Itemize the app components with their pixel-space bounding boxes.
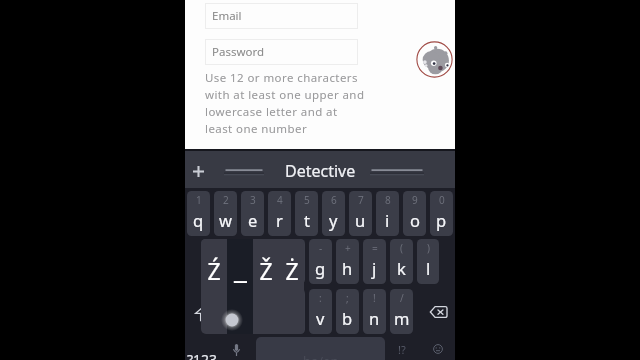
button[interactable]: 5: [295, 191, 318, 236]
staticText: 3: [250, 193, 256, 207]
staticText: 5: [304, 193, 310, 207]
staticText: Ż: [285, 255, 299, 286]
staticText: /: [400, 291, 404, 305]
staticText: m: [394, 307, 410, 329]
staticText: 6: [331, 193, 337, 207]
staticText: v: [316, 307, 325, 329]
button[interactable]: Email: [205, 3, 358, 29]
button[interactable]: 8: [376, 191, 399, 236]
staticText: u: [355, 209, 366, 231]
staticText: Ž: [259, 255, 273, 286]
button[interactable]: Emoji: [424, 337, 451, 360]
staticText: p: [436, 209, 447, 231]
button[interactable]: 6: [322, 191, 345, 236]
button[interactable]: ;: [336, 289, 359, 334]
button[interactable]: Detective: [285, 160, 356, 182]
button[interactable]: 3: [241, 191, 264, 236]
staticText: q: [193, 209, 204, 231]
button[interactable]: 1: [187, 191, 210, 236]
staticText: 2: [223, 193, 229, 207]
staticText: l: [426, 257, 431, 279]
button[interactable]: Shift: [185, 289, 226, 334]
staticText: ba/en: [303, 352, 339, 360]
staticText: k: [397, 257, 406, 279]
staticText: _: [234, 247, 247, 286]
button[interactable]: 7: [349, 191, 372, 236]
staticText: =: [372, 241, 378, 255]
button[interactable]: Voice input: [223, 337, 250, 360]
button[interactable]: Backspace: [415, 289, 455, 334]
button[interactable]: _: [227, 239, 253, 289]
button[interactable]: Password: [205, 39, 358, 65]
staticText: z: [236, 307, 244, 329]
button[interactable]: !?: [388, 337, 415, 360]
staticText: 9: [412, 193, 418, 207]
staticText: w: [219, 209, 232, 231]
button[interactable]: =: [363, 239, 386, 284]
button[interactable]: ?123: [187, 350, 218, 360]
staticText: 7: [358, 193, 364, 207]
staticText: d: [261, 257, 272, 279]
button[interactable]: Profile picture: [416, 41, 453, 78]
staticText: !: [373, 291, 376, 305]
staticText: 1: [196, 193, 202, 207]
staticText: 0: [439, 193, 445, 207]
button[interactable]: 2: [214, 191, 237, 236]
staticText: n: [369, 307, 380, 329]
staticText: :: [319, 291, 322, 305]
staticText: Email: [212, 8, 242, 24]
staticText: 8: [385, 193, 391, 207]
button[interactable]: &: [255, 239, 278, 284]
staticText: j: [372, 257, 377, 279]
staticText: y: [329, 209, 338, 231]
staticText: +: [345, 241, 351, 255]
button[interactable]: !: [363, 289, 386, 334]
staticText: Password: [212, 44, 265, 60]
staticText: r: [276, 209, 283, 231]
button[interactable]: Add to clipboard: [185, 158, 211, 184]
button[interactable]: :: [309, 289, 332, 334]
button[interactable]: -: [309, 239, 332, 284]
staticText: ): [427, 241, 430, 255]
button[interactable]: 4: [268, 191, 291, 236]
staticText: h: [342, 257, 353, 279]
button[interactable]: #: [228, 239, 251, 284]
button[interactable]: /: [390, 289, 413, 334]
staticText: i: [385, 209, 390, 231]
button[interactable]: Ž: [253, 239, 279, 289]
staticText: e: [248, 209, 258, 231]
button[interactable]: @: [201, 239, 224, 284]
button[interactable]: (: [390, 239, 413, 284]
staticText: ;: [346, 291, 349, 305]
button[interactable]: Ż: [279, 239, 304, 289]
button[interactable]: 9: [403, 191, 426, 236]
staticText: f: [291, 257, 297, 279]
staticText: a: [208, 257, 218, 279]
staticText: b: [342, 307, 353, 329]
staticText: 4: [277, 193, 283, 207]
button[interactable]: ): [417, 239, 439, 284]
button[interactable]: 0: [430, 191, 453, 236]
staticText: !?: [398, 342, 406, 357]
button[interactable]: Ź: [201, 239, 227, 289]
button[interactable]: +: [336, 239, 359, 284]
staticText: g: [315, 257, 326, 279]
staticText: t: [304, 209, 310, 231]
button[interactable]: %: [282, 239, 305, 284]
button[interactable]: *: [228, 289, 251, 334]
staticText: Ź: [207, 255, 221, 286]
staticText: Use 12 or more characters with at least …: [205, 70, 365, 137]
